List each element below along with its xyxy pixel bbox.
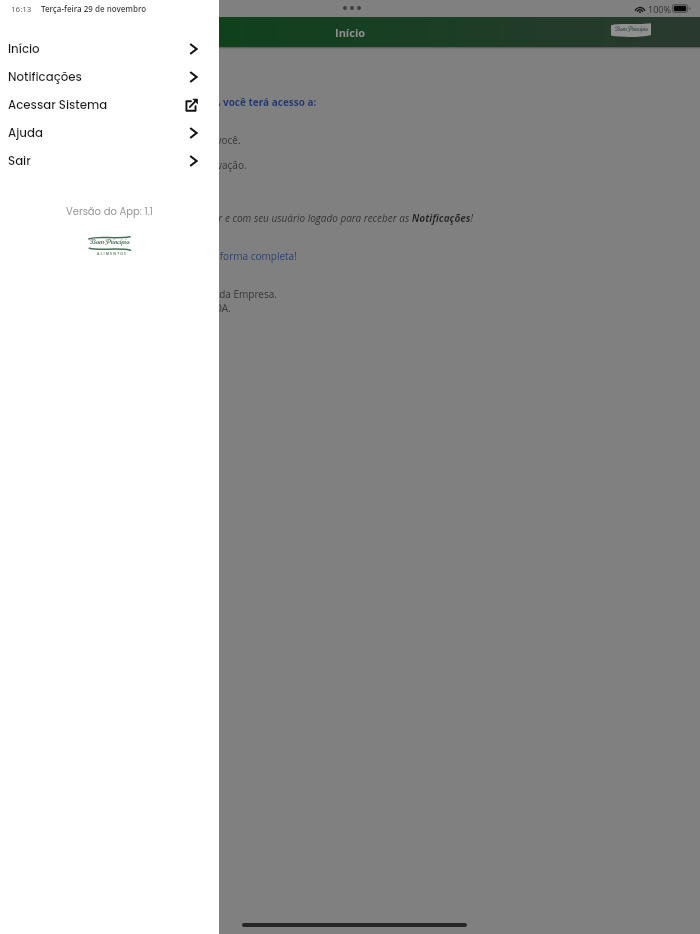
staticText: Bem-vindo ao aplicativo Bom Princípio! A…: [16, 95, 317, 109]
staticText: Aguarde, em breve teremos uma nova plata…: [16, 249, 297, 263]
staticText: Terça-feira 29 de novembro: [41, 3, 147, 14]
button[interactable]: Sair: [0, 147, 219, 175]
staticText: - Acessar o sistema para realizar a sua …: [16, 158, 247, 172]
other: Bateria: [672, 4, 691, 13]
staticText: ALIMENTOS: [97, 251, 128, 256]
staticText: BOM PRINCÍPIO ALIMENTOS INDUSTRIA LTDA.: [16, 301, 231, 315]
staticText: Início: [8, 41, 40, 58]
staticText: - Notificações exclusivas direcionadas p…: [16, 133, 241, 147]
staticText: Mantenha o aplicativo instalado no seu c…: [16, 211, 474, 225]
other: Abrir sistema externo: [185, 98, 198, 112]
button[interactable]: Ajuda: [0, 119, 219, 147]
button[interactable]: Acessar Sistema: [0, 91, 219, 119]
button[interactable]: Início: [0, 35, 219, 63]
staticText: Bom Princípio: [615, 25, 648, 34]
other: Abrir: [189, 43, 197, 55]
staticText: Ajuda: [8, 125, 43, 142]
staticText: Notificações: [8, 69, 82, 86]
other: Wi-Fi: [635, 4, 645, 13]
staticText: Sair: [8, 153, 31, 170]
staticText: Bom Princípio: [90, 236, 130, 246]
staticText: 100%: [648, 3, 671, 15]
other: Abrir: [189, 127, 197, 139]
staticText: Início: [335, 25, 366, 40]
button[interactable]: Notificações: [0, 63, 219, 91]
staticText: Versão do App: 1.1: [0, 204, 219, 218]
staticText: 16:13: [11, 3, 32, 14]
other: Abrir: [189, 71, 197, 83]
staticText: Acessar Sistema: [8, 97, 108, 114]
staticText: Atenciosamente, Tecnologia da Informação…: [16, 287, 277, 301]
other: Abrir: [189, 155, 197, 167]
